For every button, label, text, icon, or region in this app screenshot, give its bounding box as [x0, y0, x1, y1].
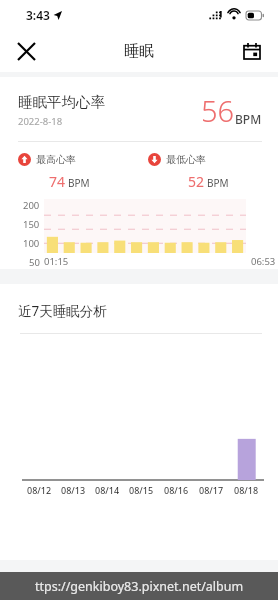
staticText: 3:43 — [26, 7, 50, 23]
staticText: 06:53 — [251, 255, 276, 268]
staticText: 08/15 — [129, 484, 154, 496]
staticText: BPM — [207, 176, 229, 190]
staticText: 08/12 — [27, 484, 52, 496]
staticText: 74 — [49, 172, 66, 191]
staticText: 50 — [29, 256, 40, 269]
staticText: 100 — [23, 237, 40, 250]
staticText: 200 — [23, 199, 40, 212]
staticText: 最低心率 — [166, 153, 206, 166]
staticText: ttps://genkiboy83.pixnet.net/album — [35, 578, 244, 595]
staticText: 08/18 — [234, 484, 259, 496]
staticText: 睡眠 — [124, 42, 154, 61]
staticText: 56 — [201, 91, 235, 130]
staticText: 最高心率 — [36, 153, 76, 166]
staticText: BPM — [235, 111, 262, 127]
button[interactable]: Calendar — [234, 33, 270, 69]
staticText: 52 — [188, 172, 205, 191]
staticText: 2022-8-18 — [18, 115, 63, 128]
staticText: 08/17 — [199, 484, 224, 496]
staticText: 08/16 — [164, 484, 189, 496]
staticText: BPM — [68, 176, 90, 190]
staticText: 睡眠平均心率 — [18, 93, 105, 111]
staticText: 01:15 — [44, 255, 69, 268]
staticText: 近7天睡眠分析 — [18, 302, 107, 320]
staticText: 150 — [23, 218, 40, 231]
staticText: 08/13 — [61, 484, 86, 496]
staticText: 08/14 — [95, 484, 120, 496]
button[interactable]: Close — [8, 33, 44, 69]
